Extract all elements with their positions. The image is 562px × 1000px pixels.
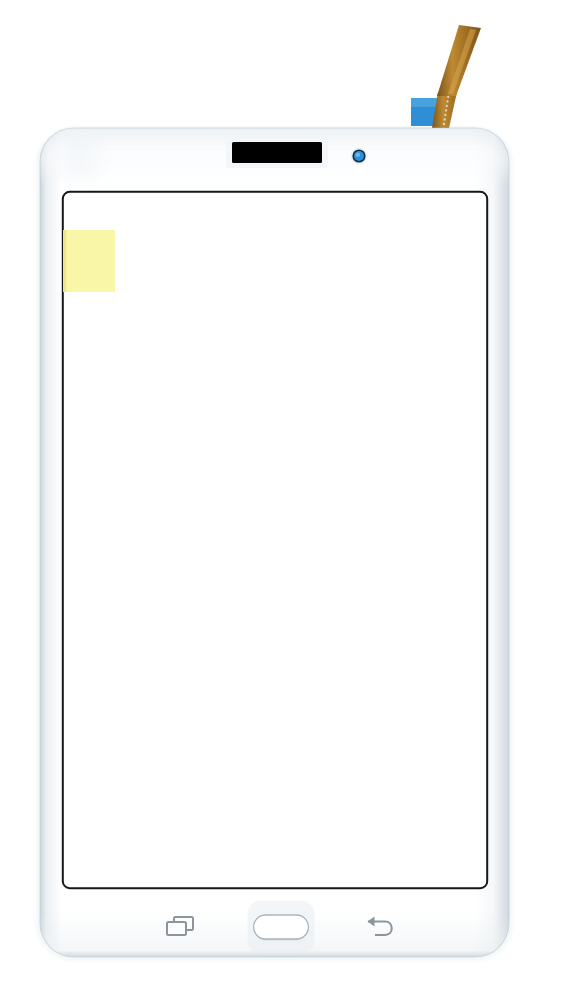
button[interactable]: Home xyxy=(243,897,319,957)
button[interactable]: Recent apps xyxy=(152,901,208,953)
button[interactable]: Back xyxy=(352,901,408,953)
